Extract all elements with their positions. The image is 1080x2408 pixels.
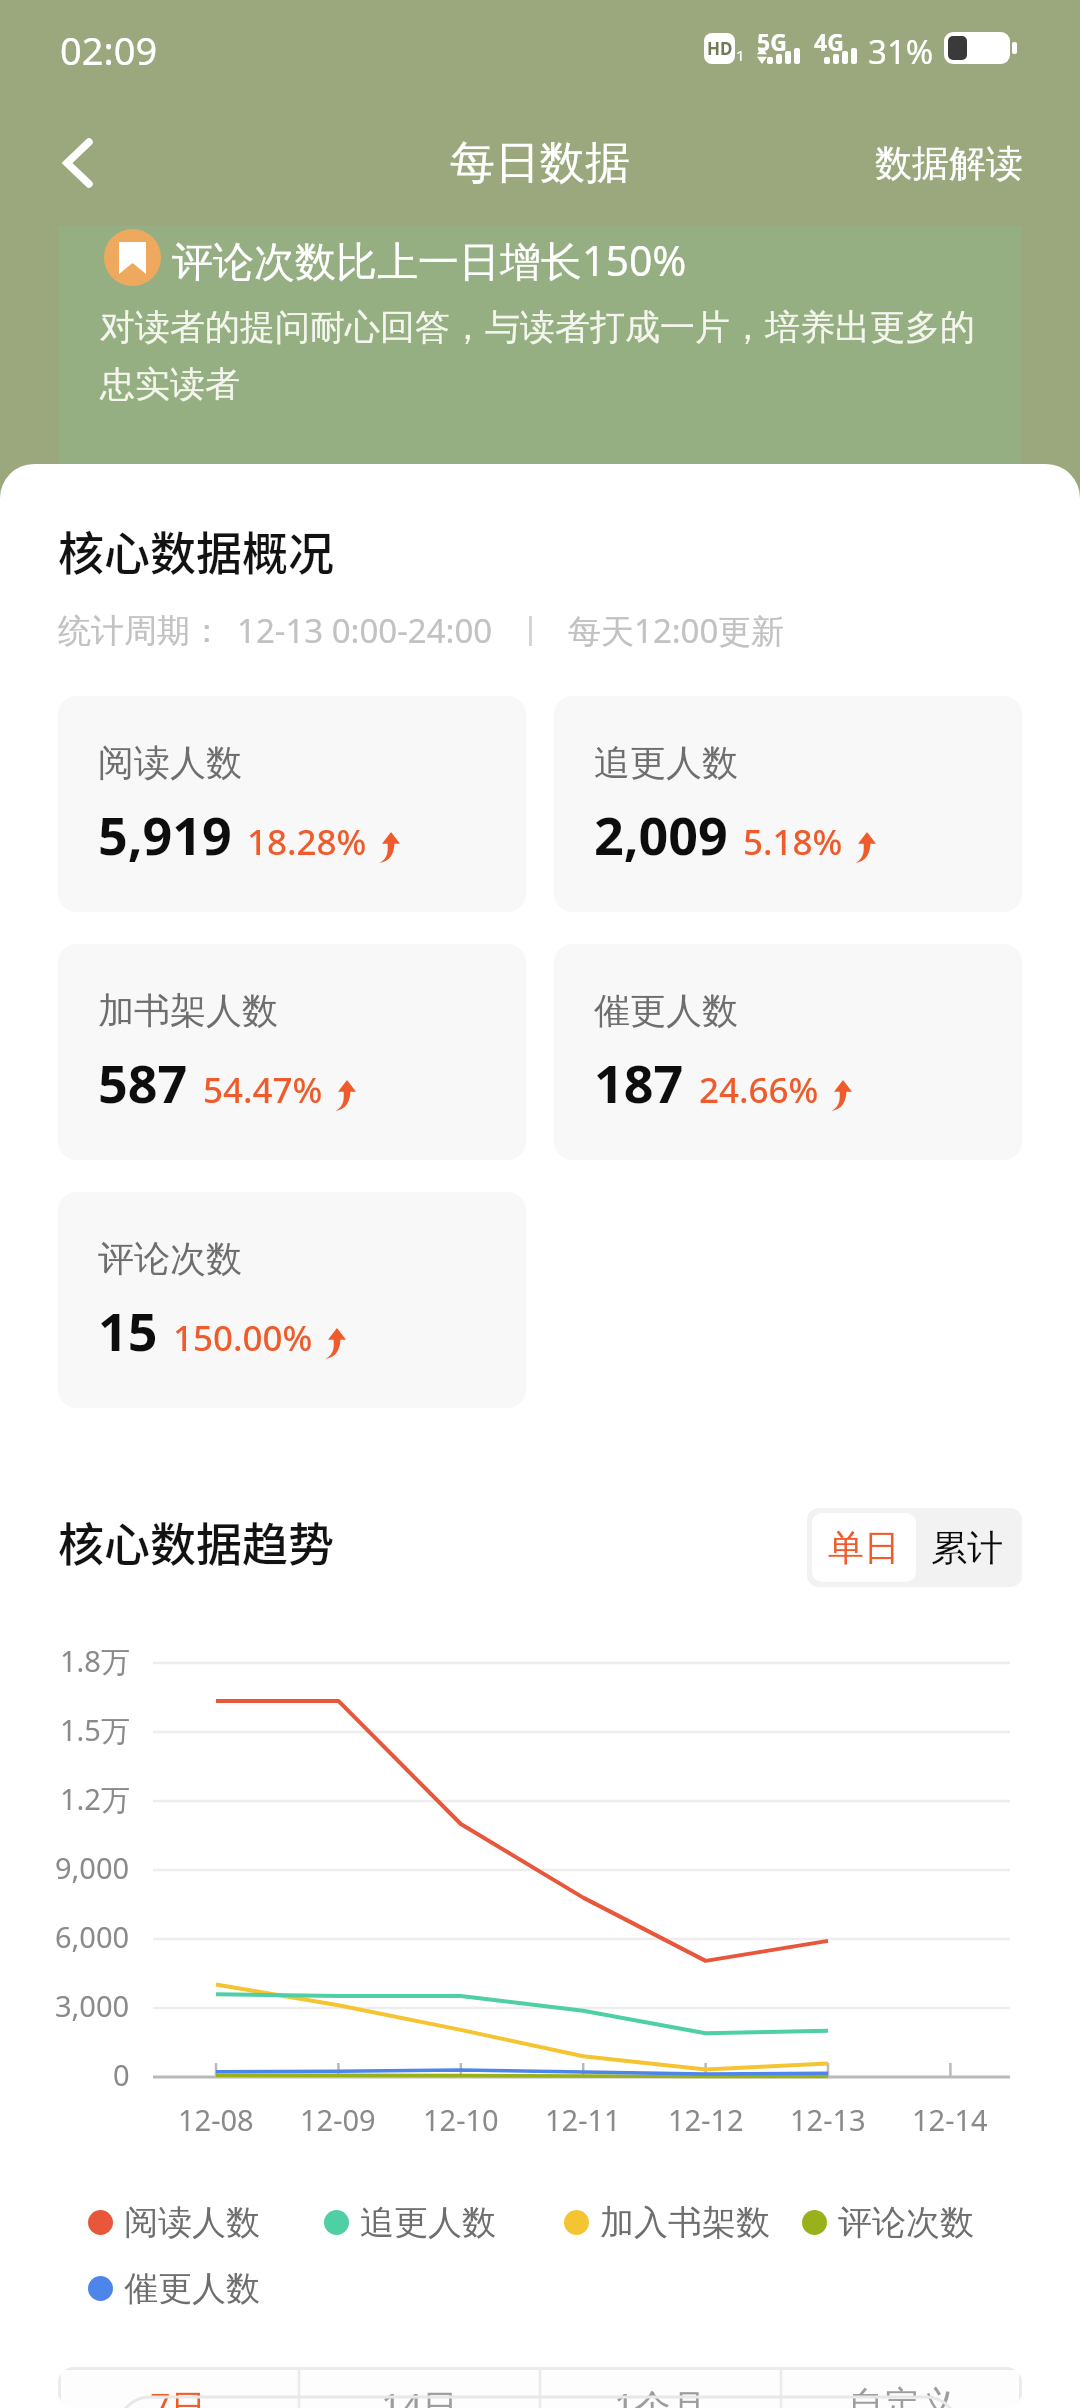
staticText: 加书架人数 (98, 988, 278, 1033)
button[interactable]: 催更人数 (82, 2261, 266, 2316)
button[interactable]: 1个月 (540, 2367, 781, 2408)
staticText: 12-13 0:00-24:00 (237, 608, 493, 653)
staticText: 5,919 (98, 799, 232, 870)
staticText: 自定义 (848, 2382, 956, 2408)
staticText: 评论次数 (98, 1236, 242, 1281)
button[interactable]: 14日 (299, 2367, 540, 2408)
button[interactable]: 阅读人数 (58, 696, 526, 912)
staticText: 1.2万 (60, 1779, 130, 1819)
staticText: HD (707, 37, 733, 60)
staticText: 12-09 (300, 2100, 376, 2139)
staticText: 31% (868, 29, 934, 74)
staticText: 54.47% (203, 1066, 323, 1114)
staticText: 加入书架数 (600, 2201, 770, 2244)
staticText: 12-10 (423, 2100, 499, 2139)
staticText: 12-14 (912, 2100, 988, 2139)
staticText: 3,000 (55, 1986, 130, 2025)
button[interactable]: 累计 (916, 1513, 1017, 1582)
staticText: 2,009 (594, 799, 728, 870)
staticText: 5G (757, 26, 787, 57)
button[interactable]: 加书架人数 (58, 944, 526, 1160)
button[interactable]: 评论次数 (796, 2195, 980, 2250)
staticText: 12-12 (668, 2100, 744, 2139)
staticText: 587 (98, 1047, 188, 1118)
button[interactable]: 单日 (812, 1513, 916, 1582)
staticText: 14日 (381, 2382, 459, 2408)
staticText: 02:09 (60, 24, 158, 76)
button[interactable]: 催更人数 (554, 944, 1022, 1160)
staticText: 24.66% (699, 1066, 819, 1114)
staticText: 12-11 (545, 2100, 621, 2139)
staticText: 187 (594, 1047, 684, 1118)
button[interactable]: 阅读人数 (82, 2195, 266, 2250)
button[interactable]: 加入书架数 (558, 2195, 776, 2250)
staticText: 7日 (150, 2382, 207, 2408)
staticText: 1个月 (614, 2382, 707, 2408)
staticText: 对读者的提问耐心回答，与读者打成一片，培养出更多的忠实读者 (100, 305, 980, 406)
button[interactable]: 评论次数比上一日增长150% (58, 226, 1022, 466)
staticText: 阅读人数 (98, 740, 242, 785)
staticText: 5.18% (743, 818, 843, 866)
button[interactable]: 追更人数 (554, 696, 1022, 912)
button[interactable]: 数据解读 (855, 118, 1080, 209)
button[interactable]: 追更人数 (318, 2195, 502, 2250)
staticText: 150.00% (173, 1314, 313, 1362)
staticText: 1.5万 (60, 1710, 130, 1750)
button[interactable]: 评论次数 (58, 1192, 526, 1408)
button[interactable]: 7日 (58, 2367, 299, 2408)
button[interactable]: 自定义 (781, 2367, 1022, 2408)
staticText: 催更人数 (594, 988, 738, 1033)
staticText: 每天12:00更新 (568, 608, 785, 653)
staticText: 统计周期： (58, 610, 223, 652)
staticText: 9,000 (55, 1848, 130, 1887)
staticText: 追更人数 (594, 740, 738, 785)
staticText: 评论次数 (838, 2201, 974, 2244)
staticText: 核心数据趋势 (58, 1508, 334, 1575)
staticText: 1 (736, 45, 745, 65)
staticText: 数据解读 (875, 140, 1023, 187)
staticText: 6,000 (55, 1917, 130, 1956)
staticText: 18.28% (247, 818, 367, 866)
staticText: 累计 (931, 1525, 1003, 1570)
staticText: 每日数据 (450, 135, 630, 192)
staticText: 评论次数比上一日增长150% (172, 232, 687, 288)
staticText: 12-13 (790, 2100, 866, 2139)
staticText: 1.8万 (60, 1641, 130, 1681)
staticText: 4G (814, 26, 844, 57)
staticText: 单日 (828, 1525, 900, 1570)
staticText: 追更人数 (360, 2201, 496, 2244)
staticText: 催更人数 (124, 2267, 260, 2310)
staticText: 阅读人数 (124, 2201, 260, 2244)
staticText: 0 (113, 2055, 130, 2094)
button[interactable]: Back (30, 115, 126, 211)
staticText: 12-08 (178, 2100, 254, 2139)
staticText: 15 (98, 1295, 158, 1366)
staticText: 核心数据概况 (58, 517, 334, 584)
